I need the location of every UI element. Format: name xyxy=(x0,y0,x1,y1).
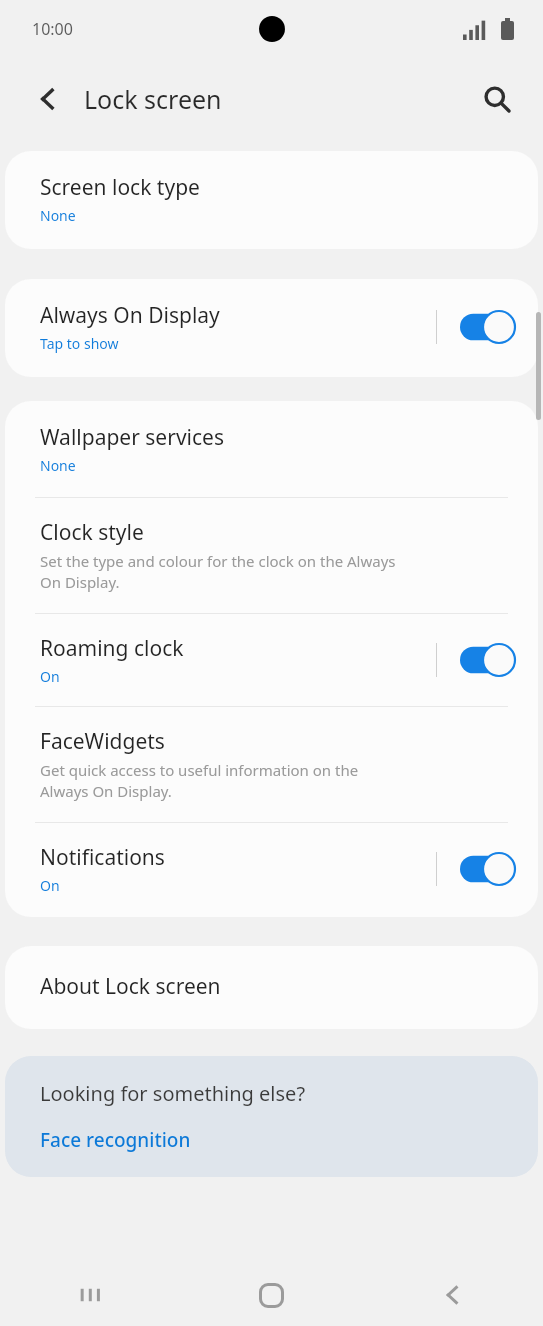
button[interactable]: Search xyxy=(471,73,523,125)
button[interactable]: Toggle xyxy=(460,852,516,886)
staticText: Face recognition xyxy=(40,1127,191,1153)
button[interactable]: Clock style xyxy=(5,498,538,613)
staticText: Wallpaper services xyxy=(40,423,224,452)
staticText: Notifications xyxy=(40,843,165,872)
staticText: None xyxy=(40,456,76,475)
staticText: Screen lock type xyxy=(40,173,200,202)
staticText: FaceWidgets xyxy=(40,727,165,756)
button[interactable]: Roaming clock xyxy=(5,614,538,706)
staticText: Tap to show xyxy=(40,334,119,353)
staticText: None xyxy=(40,206,76,225)
button[interactable]: Back xyxy=(22,73,74,125)
staticText: Set the type and colour for the clock on… xyxy=(40,551,396,593)
button[interactable]: Recents xyxy=(0,1264,181,1326)
staticText: Lock screen xyxy=(84,82,222,116)
staticText: Roaming clock xyxy=(40,634,184,663)
staticText: Clock style xyxy=(40,518,144,547)
button[interactable]: Always On Display xyxy=(5,279,538,377)
button[interactable]: Screen lock type xyxy=(5,151,538,249)
button[interactable]: About Lock screen xyxy=(5,946,538,1029)
staticText: On xyxy=(40,667,60,686)
button[interactable]: Home xyxy=(181,1264,362,1326)
staticText: On xyxy=(40,876,60,895)
staticText: About Lock screen xyxy=(40,972,221,1001)
staticText: Get quick access to useful information o… xyxy=(40,760,359,802)
button[interactable]: FaceWidgets xyxy=(5,707,538,822)
staticText: 10:00 xyxy=(32,18,73,40)
button[interactable]: Toggle xyxy=(460,310,516,344)
button[interactable]: Notifications xyxy=(5,823,538,917)
button[interactable]: Toggle xyxy=(460,643,516,677)
button[interactable]: Wallpaper services xyxy=(5,401,538,497)
button[interactable]: Face recognition xyxy=(40,1127,191,1153)
staticText: Always On Display xyxy=(40,301,220,330)
staticText: Looking for something else? xyxy=(40,1080,306,1107)
button[interactable]: Back xyxy=(362,1264,543,1326)
